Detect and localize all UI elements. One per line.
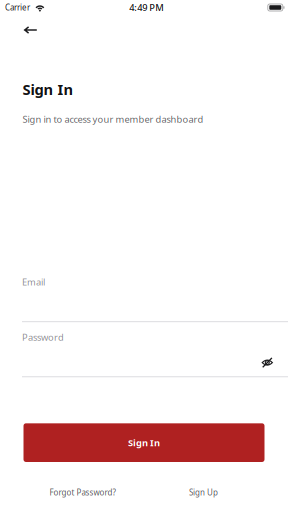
staticText: Sign In	[22, 79, 73, 99]
staticText: Email	[22, 276, 45, 288]
button[interactable]: Sign In	[23, 423, 264, 462]
button[interactable]: Forgot Password?	[22, 484, 143, 501]
button[interactable]: Show password	[255, 348, 288, 371]
staticText: Sign In	[128, 436, 160, 449]
staticText: Password	[22, 331, 64, 343]
staticText: Carrier	[5, 2, 30, 13]
staticText: 4:49 PM	[129, 1, 164, 14]
staticText: Forgot Password?	[49, 487, 115, 498]
staticText: Sign Up	[189, 487, 218, 498]
button[interactable]: Back	[0, 16, 49, 41]
staticText: Sign in to access your member dashboard	[22, 113, 203, 125]
button[interactable]: Sign Up	[143, 484, 264, 501]
